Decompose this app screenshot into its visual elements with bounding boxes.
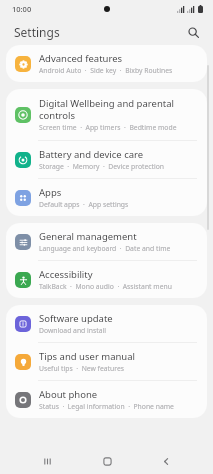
button[interactable]: Back	[153, 448, 179, 474]
staticText: TalkBack · Mono audio · Assistant menu	[39, 282, 172, 291]
staticText: Apps	[39, 186, 62, 199]
staticText: Download and install	[39, 326, 107, 335]
staticText: Screen time · App timers · Bedtime mode	[39, 123, 177, 132]
staticText: Advanced features	[39, 52, 123, 65]
staticText: Tips and user manual	[39, 350, 136, 363]
staticText: About phone	[39, 388, 98, 401]
button[interactable]: Recents	[34, 448, 60, 474]
button[interactable]: Tips and user manual	[6, 343, 207, 380]
button[interactable]: About phone	[6, 381, 207, 418]
staticText: Storage · Memory · Device protection	[39, 162, 165, 171]
staticText: 10:00	[12, 4, 32, 14]
staticText: Settings	[14, 24, 60, 40]
staticText: Battery and device care	[39, 148, 144, 161]
staticText: Software update	[39, 312, 113, 325]
staticText: Default apps · App settings	[39, 200, 129, 209]
staticText: General management	[39, 230, 137, 243]
button[interactable]: Search	[183, 22, 203, 42]
button[interactable]: Apps	[6, 179, 207, 216]
button[interactable]: Accessibility	[6, 261, 207, 298]
button[interactable]: Battery and device care	[6, 141, 207, 178]
button[interactable]: Home	[94, 448, 120, 474]
staticText: Digital Wellbeing and parental controls	[39, 97, 197, 122]
button[interactable]: Software update	[6, 305, 207, 342]
button[interactable]: General management	[6, 223, 207, 260]
staticText: Language and keyboard · Date and time	[39, 244, 171, 253]
staticText: Android Auto · Side key · Bixby Routines	[39, 66, 173, 75]
button[interactable]: Advanced features	[6, 45, 207, 82]
staticText: Status · Legal information · Phone name	[39, 402, 174, 411]
staticText: Accessibility	[39, 268, 93, 281]
staticText: Useful tips · New features	[39, 364, 125, 373]
button[interactable]: Digital Wellbeing and parental controls	[6, 89, 207, 140]
